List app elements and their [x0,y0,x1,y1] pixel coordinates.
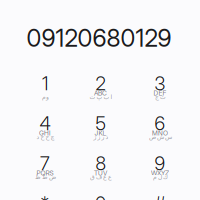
button[interactable]: 7 [17,156,73,192]
staticText: وم [41,93,48,100]
staticText: # [154,192,165,200]
staticText: 09120680129 [26,23,171,52]
staticText: ا ب پ ت [89,93,112,100]
staticText: 7 [40,152,50,175]
staticText: ABC [94,89,107,97]
button[interactable]: 9 [132,156,188,192]
button[interactable]: # [132,196,188,200]
staticText: 4 [39,112,50,135]
staticText: TUV [94,169,107,177]
staticText: PQRS [36,169,53,177]
staticText: 6 [154,112,165,135]
staticText: 2 [95,72,105,95]
staticText: 1 [42,72,48,95]
button[interactable]: 2 [72,76,128,112]
staticText: 0 [95,192,106,200]
button[interactable]: 3 [132,76,188,112]
button[interactable]: 4 [17,116,73,152]
staticText: * [40,192,49,200]
staticText: JKL [94,129,106,137]
staticText: 9 [154,152,165,175]
staticText: GHI [39,129,51,137]
button[interactable]: 1 [17,76,73,112]
button[interactable]: 6 [132,116,188,152]
staticText: DEF [153,89,166,97]
button[interactable]: * [17,196,73,200]
staticText: چ ح خ د [36,133,54,140]
staticText: ث ج [154,93,165,100]
staticText: WXYZ [151,169,169,177]
button[interactable]: 8 [72,156,128,192]
staticText: ك ل م [152,173,167,180]
button[interactable]: 0 [72,196,128,200]
staticText: ع غ ف ق [89,173,111,180]
button[interactable]: 5 [72,116,128,152]
staticText: 3 [154,72,165,95]
staticText: س ش ص [148,133,171,140]
staticText: 8 [95,152,105,175]
staticText: ض ط ظ [34,173,55,180]
staticText: ذ ر ز ژ [93,133,108,140]
staticText: 5 [95,112,105,135]
staticText: MNO [152,129,168,137]
